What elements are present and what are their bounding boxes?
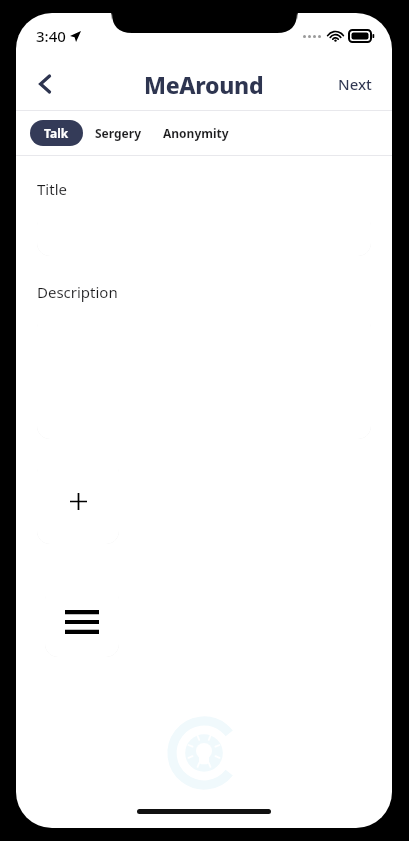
- staticText: Next: [338, 74, 372, 94]
- staticText: Sergery: [95, 125, 141, 141]
- button[interactable]: Back: [24, 62, 68, 106]
- staticText: Anonymity: [163, 125, 229, 141]
- button[interactable]: Next: [330, 68, 380, 100]
- button[interactable]: Anonymity: [153, 120, 239, 146]
- staticText: Description: [37, 282, 118, 302]
- staticText: 3:40: [36, 26, 66, 46]
- button[interactable]: Add: [37, 459, 119, 544]
- button[interactable]: Talk: [30, 120, 83, 146]
- staticText: Talk: [44, 125, 69, 141]
- button[interactable]: Sergery: [83, 120, 153, 146]
- staticText: Title: [37, 179, 67, 199]
- button[interactable]: Menu: [45, 586, 119, 657]
- staticText: MeAround: [144, 69, 264, 100]
